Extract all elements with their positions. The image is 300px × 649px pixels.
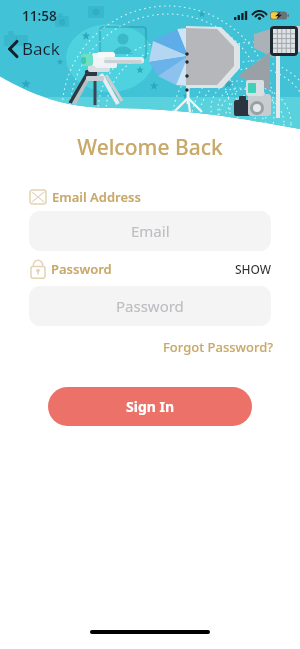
staticText: Email — [131, 221, 170, 241]
button[interactable]: Back — [6, 37, 60, 60]
staticText: Email Address — [52, 188, 141, 206]
staticText: Sign In — [126, 397, 175, 416]
button[interactable]: Email — [29, 211, 271, 251]
staticText: 11:58 — [22, 7, 57, 25]
button[interactable]: Forgot Password? — [163, 338, 274, 356]
staticText: Password — [116, 296, 184, 316]
button[interactable]: Password — [29, 286, 271, 326]
button[interactable]: SHOW — [235, 261, 272, 277]
staticText: Password — [51, 260, 112, 278]
staticText: Back — [22, 37, 60, 60]
staticText: Welcome Back — [0, 133, 300, 162]
button[interactable]: Email Address — [30, 188, 141, 206]
staticText: Forgot Password? — [163, 338, 274, 356]
staticText: SHOW — [235, 261, 272, 277]
button[interactable]: Sign In — [48, 387, 252, 426]
